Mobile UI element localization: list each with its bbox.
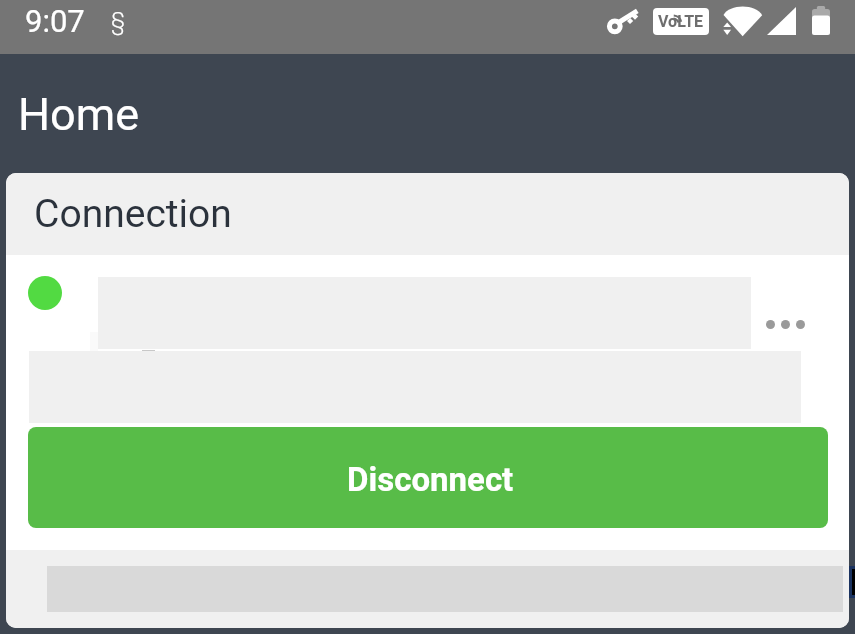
staticText: § [111, 8, 125, 35]
staticText: VoLTE [658, 12, 704, 31]
staticText: Home [18, 88, 140, 141]
staticText: Disconnect [347, 460, 514, 499]
button[interactable]: More options [755, 304, 815, 344]
staticText: Connection [34, 191, 232, 237]
staticText: 9:07 [25, 3, 85, 39]
button[interactable]: Disconnect [28, 427, 828, 528]
